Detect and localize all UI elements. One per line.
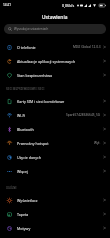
staticText: Motywy (17, 226, 101, 231)
button[interactable]: Karty SIM i sieci komórkowe (0, 94, 110, 108)
staticText: Wyszukaj w ustawieniach (14, 27, 49, 31)
staticText: Wyświetlacz (17, 198, 101, 203)
staticText: Stan bezpieczeństwa (17, 73, 101, 78)
staticText: Tapeta (17, 212, 101, 217)
button[interactable]: Przenośny hotspot (0, 136, 110, 150)
staticText: Wył. (94, 141, 101, 145)
staticText: Więcej (17, 169, 101, 174)
button[interactable]: Stan bezpieczeństwa (0, 68, 110, 82)
staticText: Użycie danych (17, 155, 101, 160)
button[interactable]: Bluetooth (0, 122, 110, 136)
staticText: O telefonie (17, 45, 71, 50)
button[interactable]: Więcej (0, 164, 110, 178)
staticText: Wi-Fi (17, 113, 64, 118)
staticText: Spark5742863664S_5G (66, 113, 101, 117)
button[interactable]: O telefonie (0, 40, 110, 54)
staticText: Karty SIM i sieci komórkowe (17, 99, 101, 104)
staticText: Przenośny hotspot (17, 141, 92, 146)
button[interactable]: Wyszukaj w ustawieniach (4, 24, 106, 34)
staticText: Aktualizacje aplikacji systemowych (17, 59, 101, 64)
button[interactable]: Wyświetlacz (0, 193, 110, 207)
button[interactable]: Aktualizacje aplikacji systemowych (0, 54, 110, 68)
button[interactable]: Wi-Fi (0, 108, 110, 122)
staticText: Bluetooth (17, 127, 101, 132)
staticText: SIECI BEZPRZEWODOWE I SIECI (6, 87, 45, 91)
staticText: MIUI Global 12.0.3 (73, 45, 101, 49)
staticText: OGÓLNE (6, 186, 17, 190)
button[interactable]: Użycie danych (0, 150, 110, 164)
button[interactable]: Motywy (0, 221, 110, 235)
staticText: 14:21 (3, 3, 12, 7)
staticText: Ustawienia (42, 14, 68, 21)
button[interactable]: Tapeta (0, 207, 110, 221)
staticText: 0,06k/s (62, 3, 75, 8)
